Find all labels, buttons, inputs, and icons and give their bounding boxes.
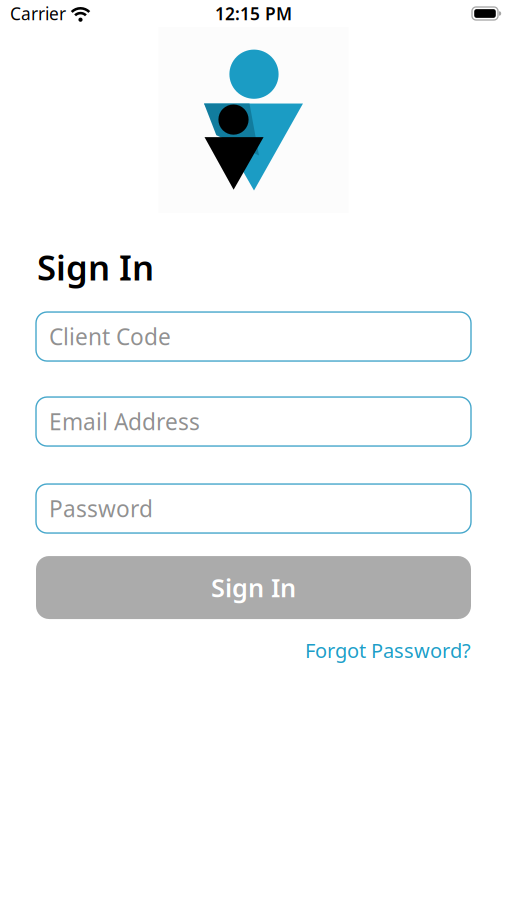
staticText: Sign In (211, 571, 296, 604)
button[interactable]: Password (36, 484, 471, 533)
staticText: Forgot Password? (305, 637, 471, 664)
staticText: Client Code (49, 321, 171, 352)
staticText: Carrier (10, 2, 66, 25)
staticText: Sign In (37, 244, 154, 290)
staticText: 12:15 PM (215, 2, 292, 25)
staticText: Email Address (49, 406, 200, 437)
button[interactable]: Client Code (36, 312, 471, 361)
staticText: Password (49, 493, 153, 524)
button[interactable]: Email Address (36, 397, 471, 446)
button[interactable]: Sign In (36, 556, 471, 619)
button[interactable]: Forgot Password? (305, 637, 471, 664)
